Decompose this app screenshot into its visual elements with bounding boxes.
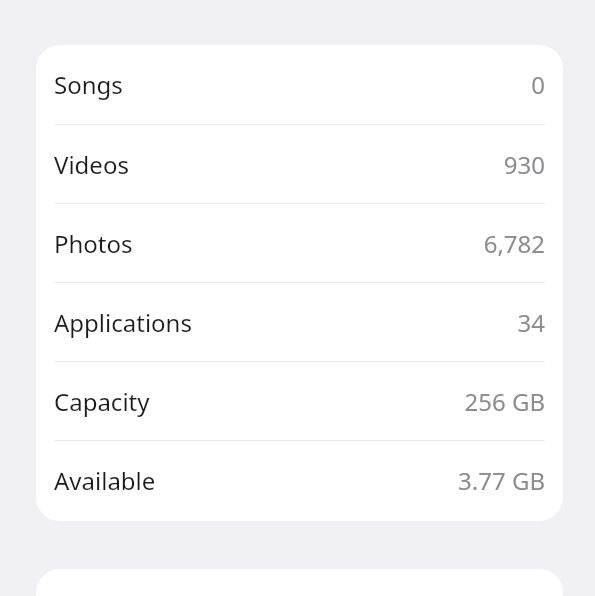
staticText: 256 GB — [464, 385, 545, 418]
staticText: Available — [54, 464, 156, 497]
button[interactable]: Capacity — [36, 361, 563, 440]
staticText: 6,782 — [483, 227, 545, 260]
button[interactable]: Photos — [36, 203, 563, 282]
staticText: 34 — [517, 306, 545, 339]
staticText: 0 — [531, 68, 545, 101]
button[interactable]: Applications — [36, 282, 563, 361]
staticText: Photos — [54, 227, 133, 260]
staticText: Capacity — [54, 385, 150, 418]
staticText: Videos — [54, 148, 129, 181]
button[interactable]: Videos — [36, 124, 563, 203]
staticText: Songs — [54, 68, 123, 101]
button[interactable]: Available — [36, 440, 563, 519]
button[interactable]: Songs — [36, 45, 563, 124]
staticText: 3.77 GB — [458, 464, 545, 497]
staticText: Applications — [54, 306, 192, 339]
staticText: 930 — [503, 148, 545, 181]
